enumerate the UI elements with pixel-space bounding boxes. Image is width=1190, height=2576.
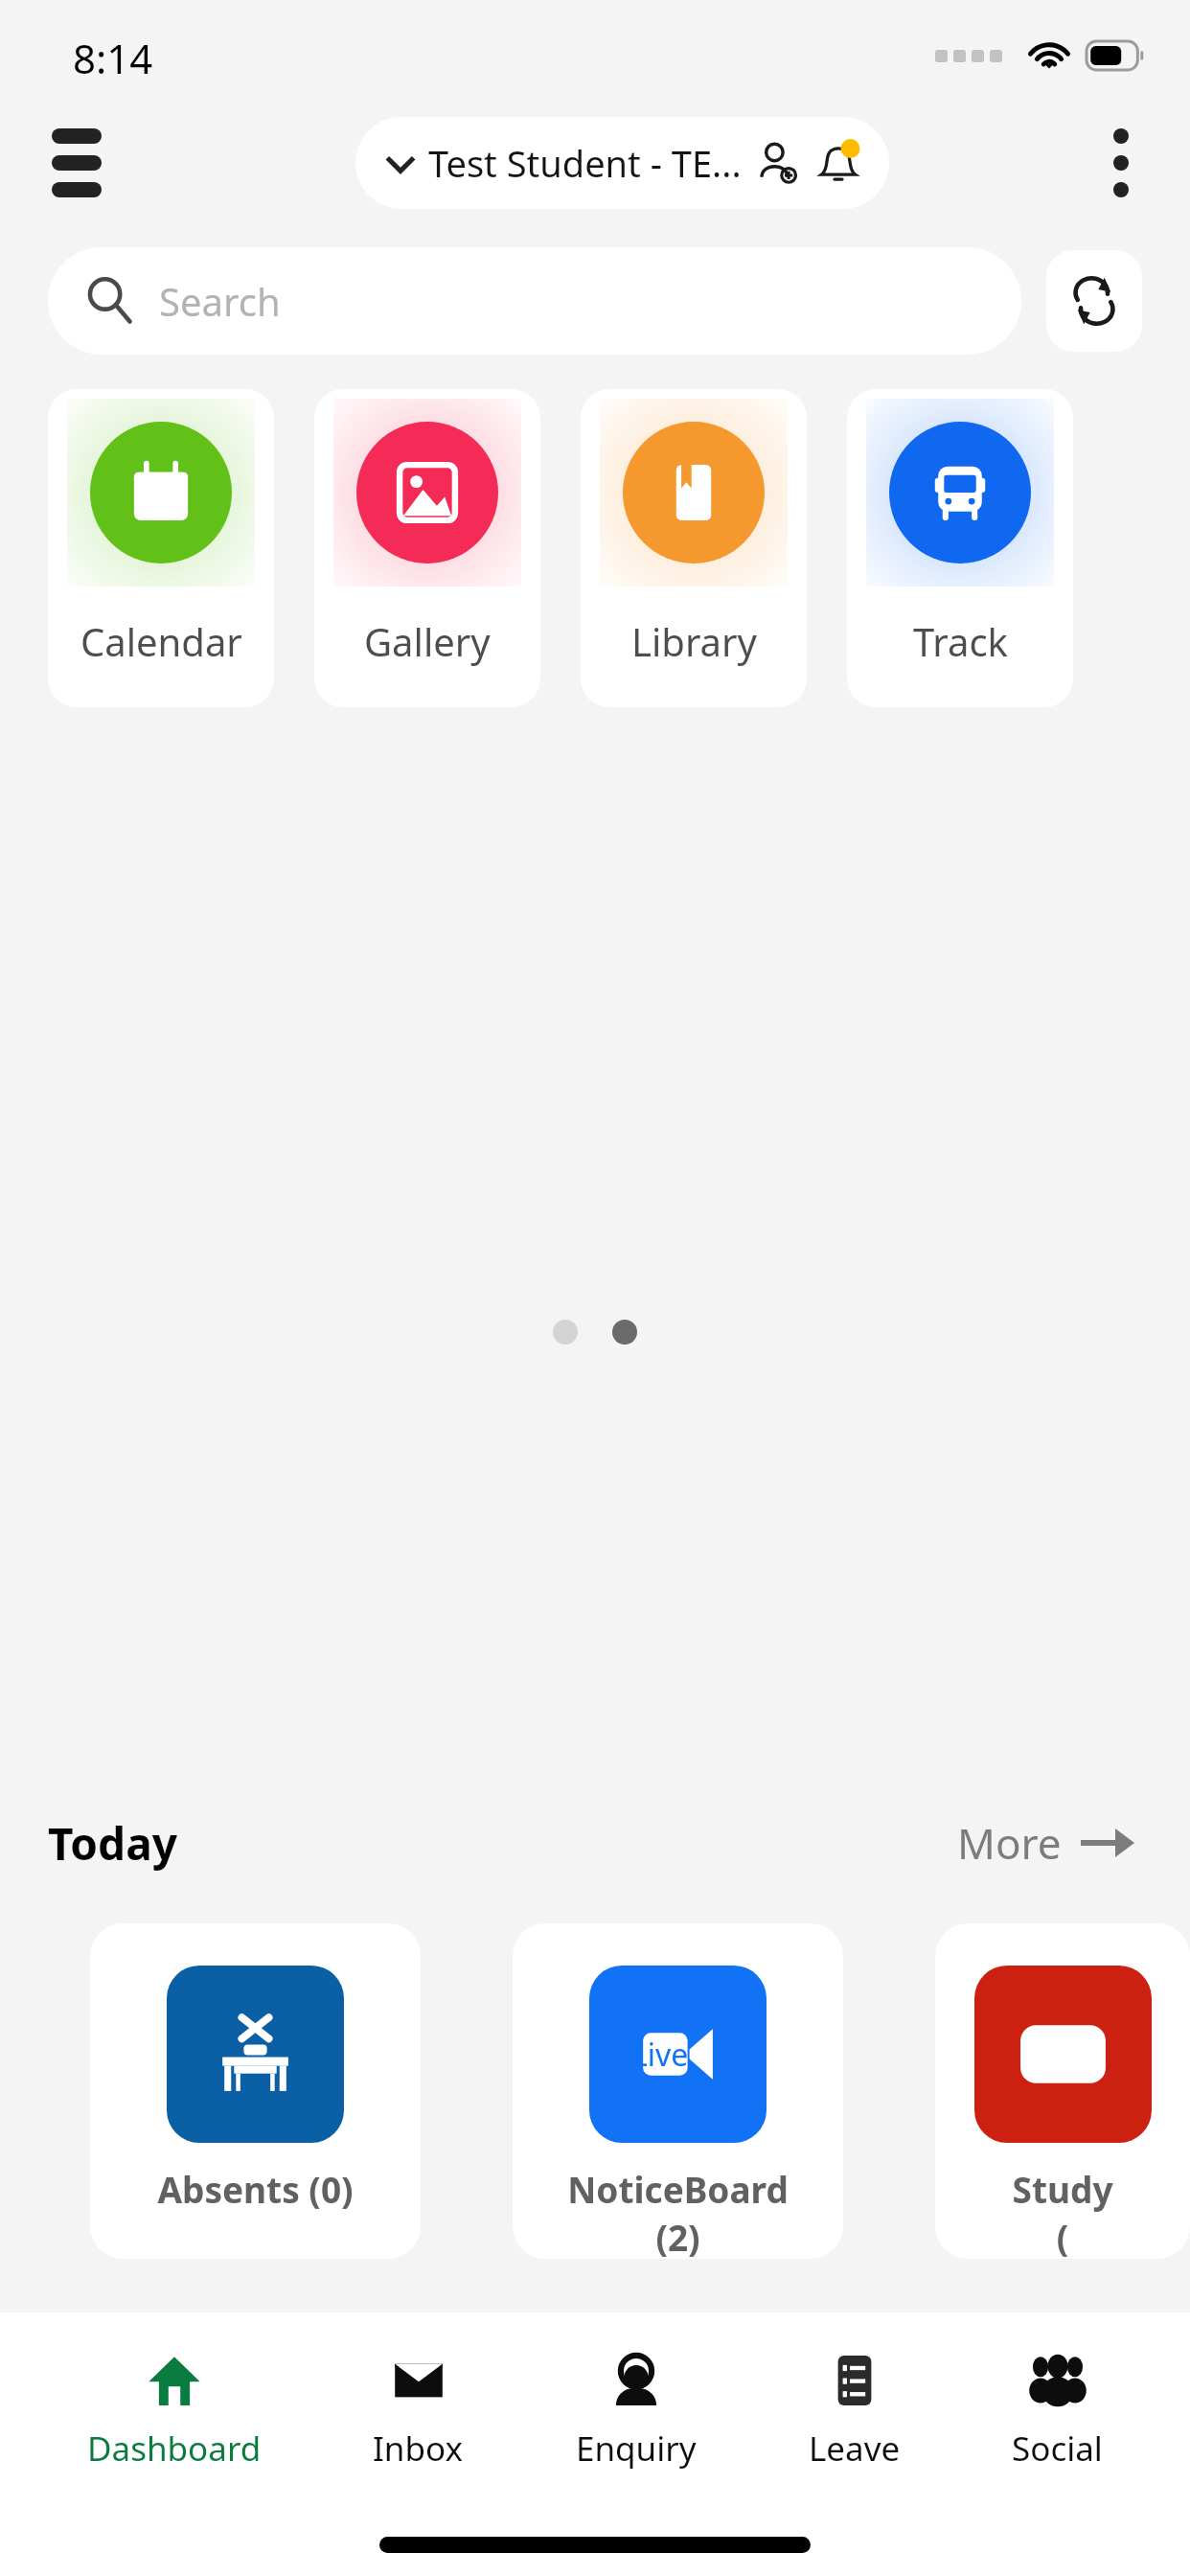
button[interactable]: Calendar — [48, 389, 274, 707]
staticText: Calendar — [80, 615, 242, 667]
button[interactable]: Dashboard — [62, 2345, 286, 2477]
button[interactable]: Search — [48, 247, 1021, 355]
button[interactable]: Study ( — [935, 1923, 1190, 2259]
staticText: Absents (0) — [90, 2165, 421, 2213]
button[interactable]: Inbox — [348, 2345, 489, 2477]
button[interactable]: Test Student - TE... — [355, 117, 889, 209]
button[interactable]: Refresh — [1046, 250, 1142, 352]
staticText: Social — [1012, 2426, 1103, 2472]
staticText: Inbox — [373, 2426, 464, 2472]
button[interactable]: Leave — [784, 2345, 926, 2477]
staticText: Today — [48, 1813, 177, 1874]
button[interactable]: More options — [1106, 121, 1136, 205]
staticText: 8:14 — [73, 31, 153, 85]
button[interactable]: Live — [513, 1923, 843, 2259]
staticText: Test Student - TE... — [428, 138, 742, 188]
other: Notifications — [814, 139, 862, 187]
staticText: Live — [631, 2034, 689, 2076]
staticText: Dashboard — [87, 2426, 262, 2472]
button[interactable]: Library — [581, 389, 807, 707]
staticText: More — [957, 1814, 1062, 1872]
other: Add student — [757, 141, 801, 185]
button[interactable]: Absents (0) — [90, 1923, 421, 2259]
button[interactable]: More — [950, 1806, 1142, 1879]
staticText: NoticeBoard (2) — [513, 2165, 843, 2259]
button[interactable]: Enquiry — [551, 2345, 721, 2477]
staticText: Gallery — [364, 615, 491, 667]
staticText: Study ( — [935, 2165, 1190, 2259]
staticText: Leave — [809, 2426, 901, 2472]
button[interactable]: Menu — [46, 123, 107, 203]
staticText: Enquiry — [576, 2426, 697, 2472]
button[interactable]: Social — [987, 2345, 1128, 2477]
staticText: Library — [631, 615, 757, 667]
staticText: Track — [913, 615, 1008, 667]
button[interactable]: Track — [847, 389, 1073, 707]
button[interactable]: Gallery — [314, 389, 540, 707]
staticText: Search — [159, 275, 281, 327]
